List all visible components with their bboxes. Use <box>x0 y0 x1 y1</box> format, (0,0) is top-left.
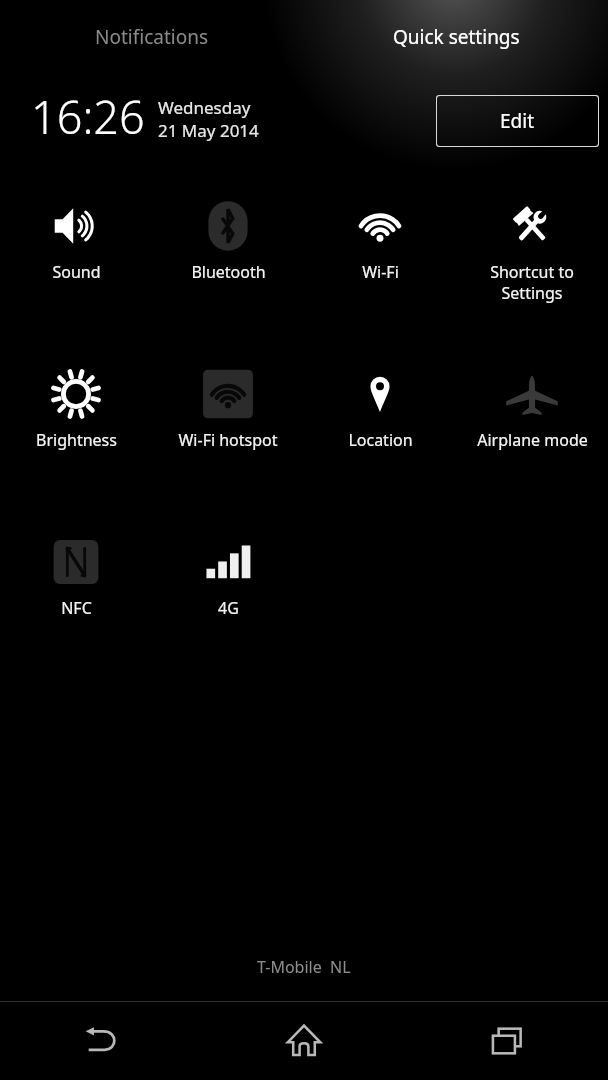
staticText: Location <box>348 429 413 451</box>
staticText: Sound <box>52 261 101 283</box>
button[interactable]: Home <box>202 1002 405 1080</box>
button[interactable]: Airplane mode <box>456 366 608 496</box>
staticText: 21 May 2014 <box>158 119 259 142</box>
staticText: Edit <box>500 108 535 134</box>
button[interactable]: Recent apps <box>405 1002 608 1080</box>
staticText: Wi-Fi hotspot <box>178 429 278 451</box>
staticText: 4G <box>218 597 239 619</box>
staticText: Shortcut to Settings <box>490 261 574 304</box>
button[interactable]: Wi-Fi <box>304 198 456 328</box>
button[interactable]: Edit <box>436 95 599 147</box>
staticText: 16:26 <box>31 86 145 147</box>
button[interactable]: Wi-Fi hotspot <box>152 366 304 496</box>
button[interactable]: Quick settings <box>304 0 608 74</box>
staticText: T-Mobile NL <box>257 956 351 978</box>
button[interactable]: 4G <box>152 534 304 664</box>
staticText: Wednesday <box>158 96 251 119</box>
staticText: Brightness <box>36 429 117 451</box>
staticText: Airplane mode <box>477 429 588 451</box>
staticText: Bluetooth <box>191 261 266 283</box>
button[interactable]: Bluetooth <box>152 198 304 328</box>
button[interactable]: NFC <box>0 534 152 664</box>
staticText: Wi-Fi <box>362 261 399 283</box>
staticText: NFC <box>61 597 92 619</box>
staticText: Quick settings <box>393 24 520 50</box>
button[interactable]: Notifications <box>0 0 304 74</box>
button[interactable]: Brightness <box>0 366 152 496</box>
staticText: Notifications <box>95 24 209 50</box>
button[interactable]: Back <box>0 1002 202 1080</box>
button[interactable]: Location <box>304 366 456 496</box>
button[interactable]: Shortcut to Settings <box>456 198 608 328</box>
button[interactable]: Sound <box>0 198 152 328</box>
